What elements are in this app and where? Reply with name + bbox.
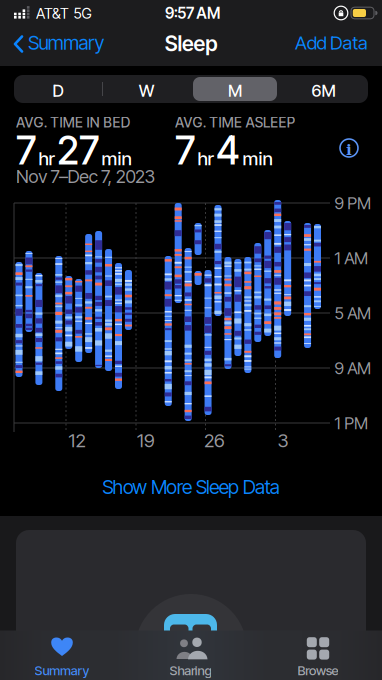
staticText: 5 AM	[334, 303, 371, 323]
staticText: 6M	[311, 80, 335, 101]
staticText: 3	[277, 429, 288, 452]
staticText: Add Data	[295, 31, 368, 54]
staticText: 12	[68, 429, 85, 452]
staticText: 9 AM	[334, 358, 371, 378]
staticText: 26	[204, 429, 225, 452]
staticText: 19	[137, 429, 155, 452]
staticText: 1 AM	[334, 248, 368, 268]
staticText: 7	[16, 127, 36, 174]
staticText: W	[139, 80, 155, 101]
staticText: Sharing	[170, 663, 212, 678]
staticText: Summary	[28, 31, 104, 54]
staticText: AVG. TIME ASLEEP	[175, 114, 295, 131]
staticText: AVG. TIME IN BED	[16, 114, 131, 131]
staticText: D	[52, 80, 63, 101]
staticText: Summary	[35, 663, 89, 678]
staticText: 5G	[73, 4, 91, 22]
staticText: 7	[175, 127, 195, 174]
staticText: Show More Sleep Data	[102, 475, 280, 499]
staticText: 9:57 AM	[165, 4, 220, 23]
staticText: 9 PM	[334, 193, 371, 213]
staticText: Nov 7–Dec 7, 2023	[16, 165, 156, 187]
staticText: min	[101, 147, 131, 170]
staticText: 4	[216, 127, 240, 174]
staticText: 1 PM	[334, 413, 368, 433]
staticText: hr	[38, 147, 54, 170]
staticText: min	[242, 147, 272, 170]
staticText: 27	[57, 127, 99, 174]
staticText: Browse	[297, 663, 338, 678]
staticText: Sleep	[165, 31, 217, 56]
staticText: AT&T	[36, 4, 69, 22]
staticText: M	[228, 80, 242, 101]
staticText: i	[346, 140, 352, 158]
staticText: hr	[197, 147, 213, 170]
